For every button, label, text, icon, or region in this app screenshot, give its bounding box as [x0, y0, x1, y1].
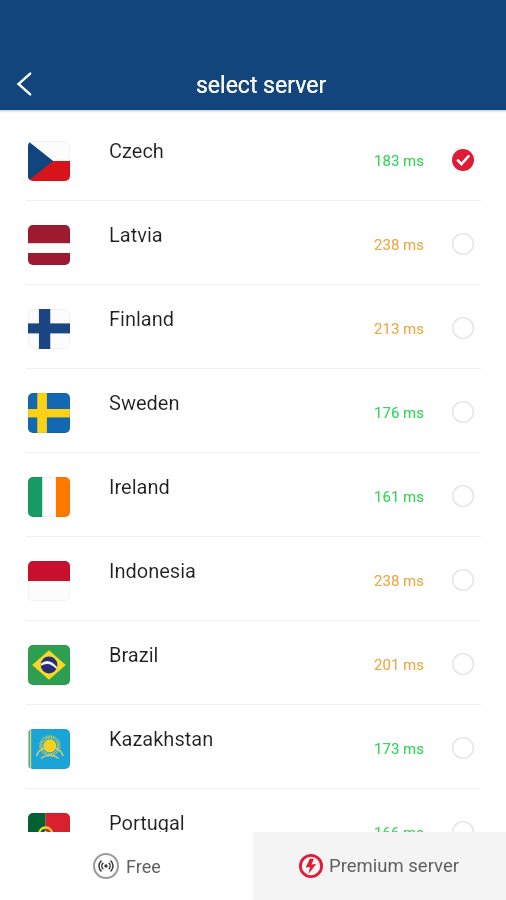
staticText: select server [196, 72, 327, 99]
staticText: Premium server [329, 855, 460, 877]
staticText: 166 ms [374, 824, 424, 842]
staticText: 238 ms [374, 572, 424, 590]
button[interactable]: Ireland [0, 453, 506, 537]
button[interactable]: Free [0, 832, 253, 900]
button[interactable]: Indonesia [0, 537, 506, 621]
staticText: Free [126, 856, 161, 877]
staticText: 173 ms [374, 740, 424, 758]
button[interactable]: Premium server [253, 832, 506, 900]
button[interactable]: Kazakhstan [0, 705, 506, 789]
staticText: 161 ms [374, 488, 424, 506]
button[interactable]: Back [1, 60, 49, 108]
staticText: Kazakhstan [109, 727, 214, 750]
staticText: 238 ms [374, 236, 424, 254]
staticText: Portugal [109, 811, 185, 834]
staticText: 183 ms [374, 152, 424, 170]
staticText: Finland [109, 307, 175, 330]
button[interactable]: Finland [0, 285, 506, 369]
staticText: 201 ms [374, 656, 424, 674]
button[interactable]: Czech [0, 117, 506, 201]
button[interactable]: Sweden [0, 369, 506, 453]
staticText: 213 ms [374, 320, 424, 338]
staticText: Brazil [109, 643, 159, 666]
staticText: Indonesia [109, 559, 196, 582]
staticText: 176 ms [374, 404, 424, 422]
button[interactable]: Portugal [0, 789, 506, 873]
staticText: Ireland [109, 475, 170, 498]
staticText: Latvia [109, 223, 163, 246]
button[interactable]: Latvia [0, 201, 506, 285]
staticText: Czech [109, 139, 164, 162]
staticText: Sweden [109, 391, 180, 414]
button[interactable]: Brazil [0, 621, 506, 705]
